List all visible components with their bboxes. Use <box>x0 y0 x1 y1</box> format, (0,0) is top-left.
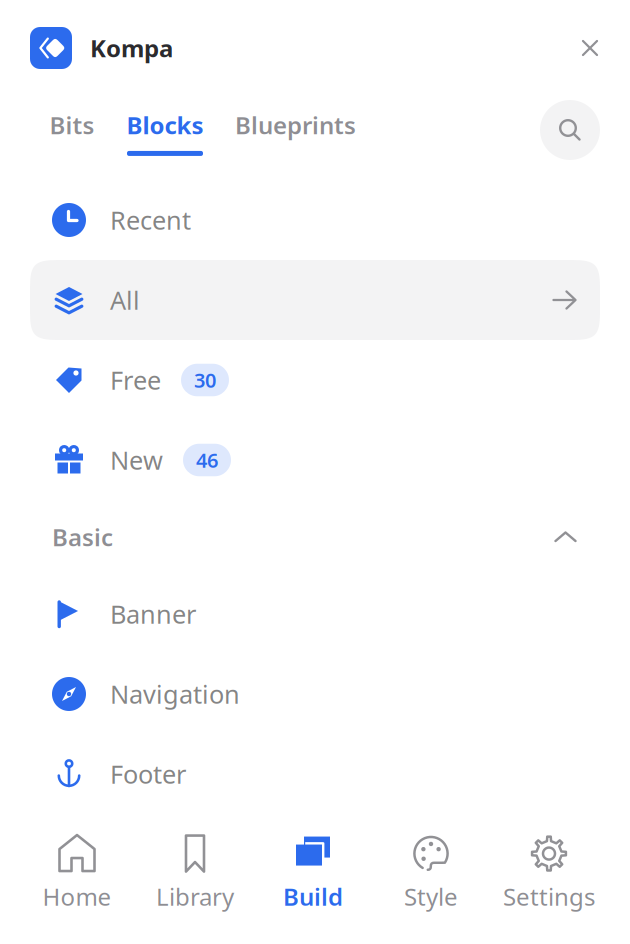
staticText: Navigation <box>110 677 240 711</box>
staticText: Basic <box>52 521 113 553</box>
button[interactable]: Free <box>30 340 600 420</box>
staticText: Recent <box>110 203 191 237</box>
button[interactable]: Search <box>540 100 600 165</box>
staticText: All <box>110 283 140 317</box>
staticText: Settings <box>503 881 595 912</box>
staticText: Style <box>404 881 458 912</box>
button[interactable]: Bits <box>51 109 93 156</box>
button[interactable]: New <box>30 420 600 500</box>
staticText: 30 <box>194 367 216 393</box>
staticText: Library <box>156 881 234 912</box>
button[interactable]: Library <box>136 830 254 916</box>
button[interactable]: Banner <box>30 574 600 654</box>
staticText: Home <box>42 881 111 912</box>
button[interactable]: Blocks <box>127 109 203 156</box>
staticText: Blueprints <box>235 109 356 141</box>
staticText: Footer <box>110 757 186 791</box>
staticText: Banner <box>110 597 196 631</box>
button[interactable]: Build <box>254 830 372 916</box>
button[interactable]: Close <box>568 26 612 70</box>
staticText: Blocks <box>126 109 203 141</box>
staticText: Kompa <box>90 32 173 64</box>
button[interactable]: Footer <box>30 734 600 814</box>
staticText: New <box>110 443 163 477</box>
button[interactable]: Settings <box>490 830 608 916</box>
staticText: Bits <box>49 109 94 141</box>
staticText: Free <box>110 363 161 397</box>
button[interactable]: Basic <box>30 500 600 574</box>
button[interactable]: Home <box>18 830 136 916</box>
staticText: Build <box>283 881 343 912</box>
button[interactable]: Style <box>372 830 490 916</box>
button[interactable]: Navigation <box>30 654 600 734</box>
button[interactable]: Recent <box>30 180 600 260</box>
button[interactable]: All <box>30 260 600 340</box>
staticText: 46 <box>196 447 218 473</box>
button[interactable]: Blueprints <box>237 109 354 156</box>
